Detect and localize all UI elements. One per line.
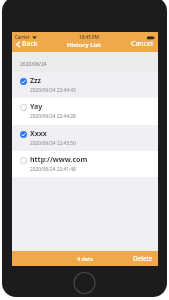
staticText: Xxxx	[30, 129, 47, 139]
staticText: 2020/06/24 22:44:43	[30, 87, 76, 94]
button[interactable]: Yay	[12, 98, 158, 125]
staticText: History List	[67, 40, 101, 48]
staticText: 2020/06/24 22:44:28	[30, 113, 76, 120]
staticText: http://www.com	[30, 155, 88, 165]
button[interactable]: Cancel	[126, 37, 158, 51]
staticText: 4 data	[77, 255, 93, 262]
staticText: 2020/06/24 22:43:50	[30, 140, 76, 147]
button[interactable]: Zzz	[12, 72, 158, 98]
button[interactable]: Xxxx	[12, 125, 158, 151]
staticText: Carrier	[15, 34, 30, 40]
staticText: 2020/06/24 22:41:48	[30, 166, 76, 173]
staticText: Delete	[133, 254, 153, 263]
staticText: 10:45 PM	[79, 34, 99, 40]
staticText: 2020/06/24	[20, 61, 47, 68]
staticText: Cancel	[131, 39, 153, 49]
button[interactable]: Delete	[128, 252, 158, 265]
staticText: Back	[22, 39, 38, 49]
staticText: Yay	[30, 102, 43, 112]
staticText: Zzz	[30, 76, 41, 86]
button[interactable]: Back	[12, 37, 42, 51]
button[interactable]: http://www.com	[12, 151, 158, 177]
